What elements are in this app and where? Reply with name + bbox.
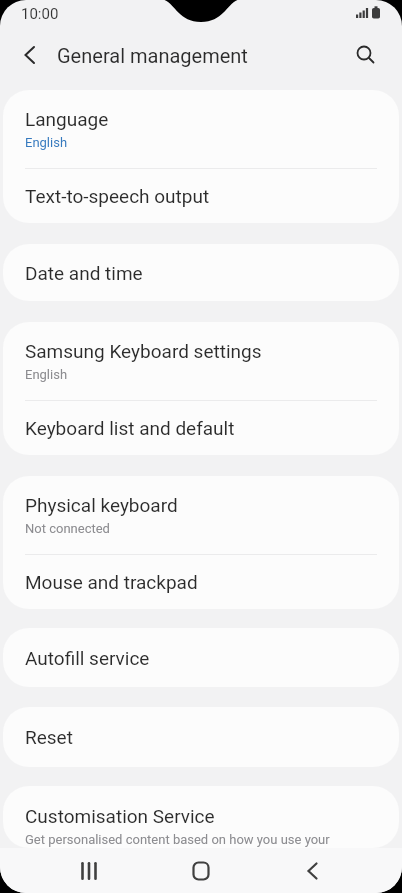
button[interactable]: Mouse and trackpad [3,555,399,609]
staticText: Language [25,108,109,130]
staticText: Physical keyboard [25,494,178,516]
staticText: Autofill service [25,647,150,669]
staticText: Customisation Service [25,805,215,827]
button[interactable]: Physical keyboard [3,476,399,554]
staticText: Reset [25,726,73,748]
button[interactable] [10,36,50,74]
staticText: General management [57,44,248,67]
button[interactable]: Autofill service [3,628,399,687]
staticText: English [25,135,68,150]
staticText: Get personalised content based on how yo… [25,832,330,847]
button[interactable] [273,848,353,893]
button[interactable]: Text-to-speech output [3,169,399,223]
button[interactable]: Customisation Service [3,786,399,848]
staticText: 10:00 [21,5,59,23]
staticText: English [25,367,68,382]
button[interactable]: Keyboard list and default [3,401,399,455]
button[interactable] [161,848,241,893]
button[interactable]: Samsung Keyboard settings [3,322,399,400]
staticText: Keyboard list and default [25,417,235,439]
button[interactable]: Language [3,90,399,168]
staticText: Date and time [25,262,143,284]
staticText: Text-to-speech output [25,185,210,207]
button[interactable]: Reset [3,707,399,767]
staticText: Not connected [25,521,110,536]
button[interactable] [346,36,386,74]
staticText: Samsung Keyboard settings [25,340,262,362]
staticText: Mouse and trackpad [25,571,198,593]
button[interactable] [49,848,129,893]
button[interactable]: Date and time [3,244,399,301]
